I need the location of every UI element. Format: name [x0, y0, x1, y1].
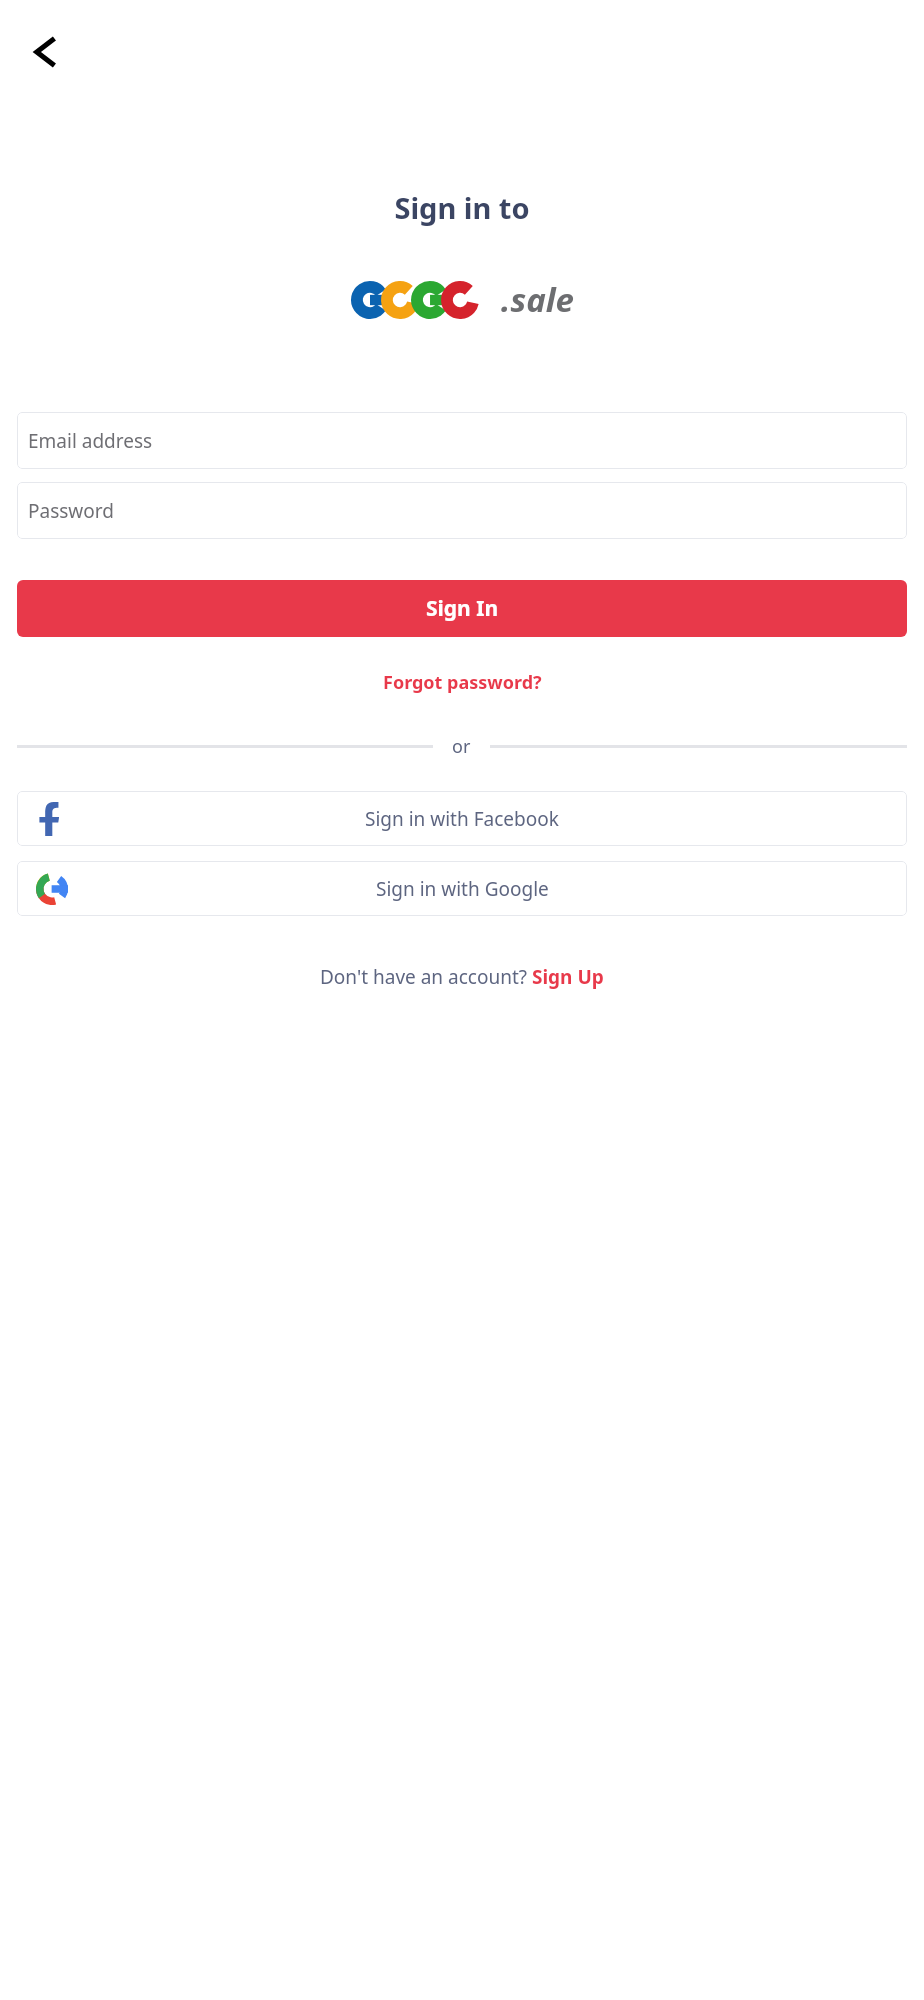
staticText: Sign in with Facebook	[365, 806, 559, 832]
button[interactable]: Password	[17, 482, 907, 539]
staticText: Email address	[28, 428, 153, 454]
button[interactable]: Sign In	[17, 580, 907, 637]
staticText: Password	[28, 498, 114, 524]
staticText: Don't have an account? Sign Up	[320, 964, 604, 990]
staticText: .sale	[501, 277, 574, 322]
button[interactable]: Email address	[17, 412, 907, 469]
staticText: Forgot password?	[383, 670, 542, 695]
button[interactable]: Sign in with Google	[17, 861, 907, 916]
staticText: Sign In	[426, 594, 499, 623]
button[interactable]: Sign in with Facebook	[17, 791, 907, 846]
button[interactable]: Back	[8, 16, 80, 88]
staticText: Sign in with Google	[376, 876, 549, 902]
staticText: Sign in to	[394, 188, 530, 227]
button[interactable]: Don't have an account? Sign Up	[314, 958, 610, 996]
staticText: or	[452, 734, 471, 759]
button[interactable]: Forgot password?	[371, 665, 554, 700]
